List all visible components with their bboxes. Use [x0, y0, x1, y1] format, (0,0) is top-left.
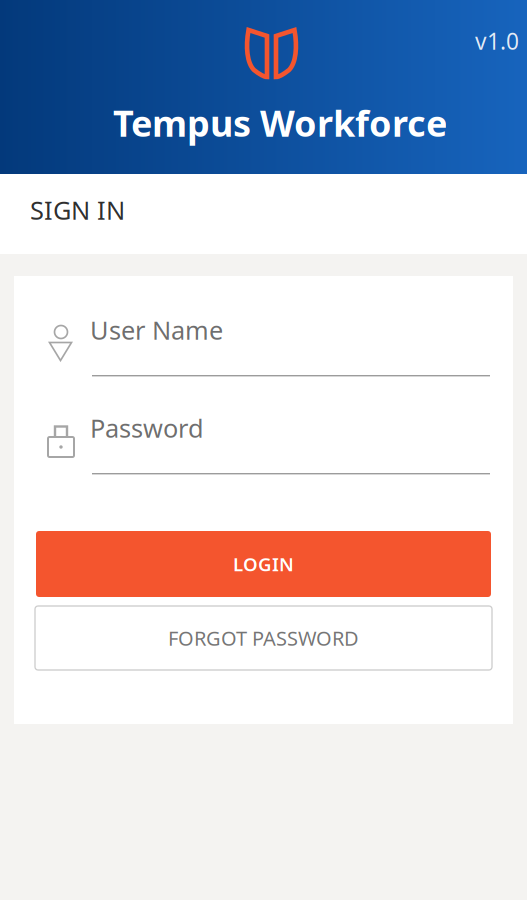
staticText: LOGIN: [233, 552, 294, 576]
staticText: SIGN IN: [30, 193, 125, 227]
button[interactable]: FORGOT PASSWORD: [35, 606, 492, 670]
staticText: Password: [90, 411, 204, 445]
staticText: Tempus Workforce: [113, 99, 447, 147]
staticText: v1.0: [475, 26, 519, 56]
button[interactable]: LOGIN: [36, 531, 491, 597]
staticText: User Name: [90, 313, 223, 347]
staticText: FORGOT PASSWORD: [168, 625, 359, 651]
